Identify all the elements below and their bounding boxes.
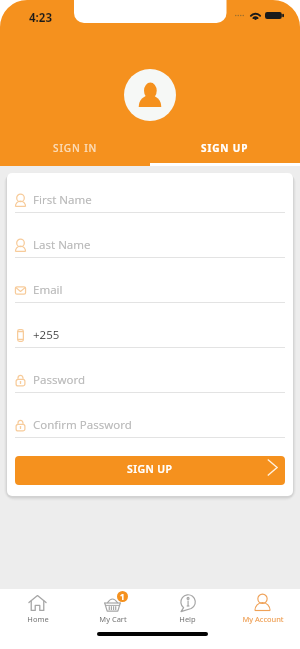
staticText: Password <box>33 372 86 388</box>
staticText: My Cart <box>99 614 127 624</box>
button[interactable]: SIGN UP <box>150 130 300 166</box>
button[interactable]: Help <box>150 589 225 626</box>
staticText: First Name <box>33 192 92 208</box>
button[interactable]: SIGN UP <box>15 456 285 485</box>
staticText: My Account <box>242 614 284 624</box>
staticText: 1 <box>120 591 125 602</box>
button[interactable]: First Name <box>15 173 285 213</box>
button[interactable]: 1 <box>75 589 150 626</box>
staticText: SIGN UP <box>201 141 249 155</box>
staticText: Confirm Password <box>33 417 132 433</box>
staticText: SIGN UP <box>127 462 173 476</box>
staticText: Home <box>27 614 49 624</box>
button[interactable]: SIGN IN <box>0 130 150 166</box>
staticText: Last Name <box>33 237 91 253</box>
button[interactable]: Confirm Password <box>15 393 285 438</box>
staticText: 4:23 <box>29 10 52 26</box>
button[interactable]: +255 <box>15 303 285 348</box>
button[interactable]: My Account <box>225 589 300 626</box>
button[interactable]: Email <box>15 258 285 303</box>
button[interactable]: Password <box>15 348 285 393</box>
button[interactable]: Last Name <box>15 213 285 258</box>
button[interactable]: Home <box>0 589 75 626</box>
staticText: +255 <box>33 327 60 343</box>
staticText: SIGN IN <box>53 141 98 155</box>
staticText: Help <box>179 614 196 624</box>
staticText: Email <box>33 282 63 298</box>
